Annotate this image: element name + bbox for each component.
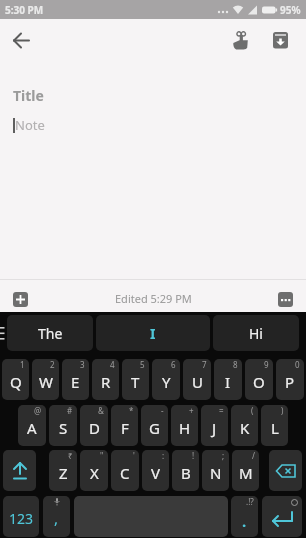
button[interactable] (262, 496, 302, 537)
button[interactable]: The (7, 315, 93, 351)
button[interactable] (3, 450, 36, 491)
staticText: H (179, 418, 191, 438)
button[interactable]: S (49, 405, 77, 446)
staticText: 123 (9, 509, 34, 528)
staticText: W (39, 372, 53, 392)
staticText: 3 (80, 359, 85, 370)
staticText: ₹ (68, 450, 73, 461)
staticText: " (100, 450, 104, 461)
staticText: + (189, 405, 194, 416)
staticText: Title (13, 86, 44, 105)
button[interactable]: J (201, 405, 228, 446)
staticText: T (131, 372, 140, 392)
button[interactable]: B (172, 450, 199, 491)
button[interactable] (0, 19, 43, 62)
staticText: & (98, 405, 104, 416)
staticText: 4 (110, 359, 115, 370)
staticText: 0 (295, 359, 300, 370)
staticText: , (54, 508, 59, 528)
button[interactable]: E (62, 359, 89, 400)
button[interactable]: . (231, 496, 258, 537)
staticText: D (89, 418, 100, 438)
staticText: @ (34, 405, 42, 416)
button[interactable]: G (141, 405, 168, 446)
button[interactable]: A (18, 405, 46, 446)
button[interactable]: P (276, 359, 304, 400)
staticText: B (181, 463, 191, 483)
staticText: F (121, 418, 129, 438)
staticText: 95% (280, 3, 301, 17)
staticText: I (150, 324, 156, 343)
staticText: ' (133, 450, 135, 461)
button[interactable]: Hi (213, 315, 299, 351)
staticText: The (38, 324, 63, 343)
button[interactable]: Y (152, 359, 180, 400)
staticText: ( (251, 405, 254, 416)
staticText: 1 (20, 359, 25, 370)
button[interactable] (269, 450, 302, 491)
staticText: # (67, 405, 73, 416)
button[interactable]: D (80, 405, 108, 446)
button[interactable]: R (92, 359, 119, 400)
button[interactable] (13, 292, 28, 307)
button[interactable]: L (261, 405, 288, 446)
staticText: .!? (246, 496, 254, 507)
button[interactable]: T (122, 359, 149, 400)
button[interactable]: 123 (3, 496, 39, 537)
button[interactable] (260, 19, 302, 62)
staticText: V (151, 463, 161, 483)
button[interactable]: M (232, 450, 259, 491)
staticText: / (252, 450, 255, 461)
staticText: O (253, 372, 265, 392)
button[interactable]: W (32, 359, 59, 400)
staticText: P (285, 372, 295, 392)
staticText: U (192, 372, 203, 392)
button[interactable] (278, 292, 293, 307)
staticText: C (120, 463, 130, 483)
button[interactable]: C (111, 450, 139, 491)
staticText: E (71, 372, 80, 392)
staticText: Z (59, 463, 68, 483)
button[interactable]: I (96, 315, 210, 351)
staticText: Note (15, 116, 45, 134)
button[interactable]: F (111, 405, 138, 446)
button[interactable]: , (43, 496, 70, 537)
staticText: R (101, 372, 111, 392)
staticText: A (27, 418, 37, 438)
staticText: X (90, 463, 99, 483)
staticText: 7 (202, 359, 207, 370)
staticText: 8 (233, 359, 238, 370)
button[interactable]: V (142, 450, 169, 491)
staticText: K (240, 418, 250, 438)
staticText: 5 (140, 359, 145, 370)
staticText: J (212, 418, 217, 438)
staticText: ) (281, 405, 284, 416)
button[interactable]: Q (2, 359, 29, 400)
staticText: S (59, 418, 68, 438)
staticText: Edited 5:29 PM (115, 291, 192, 306)
staticText: * (129, 405, 134, 416)
button[interactable] (220, 19, 260, 62)
staticText: L (271, 418, 279, 438)
staticText: ; (222, 450, 225, 461)
staticText: G (149, 418, 160, 438)
staticText: N (210, 463, 222, 483)
button[interactable]: N (202, 450, 229, 491)
button[interactable]: X (80, 450, 108, 491)
button[interactable]: Z (49, 450, 77, 491)
staticText: Q (10, 372, 22, 392)
staticText: Y (162, 372, 171, 392)
staticText: 5:30 PM (5, 3, 44, 17)
button[interactable]: U (183, 359, 211, 400)
staticText: . (242, 511, 247, 531)
staticText: 2 (50, 359, 55, 370)
staticText: ! (192, 450, 195, 461)
staticText: = (219, 405, 224, 416)
button[interactable]: K (231, 405, 258, 446)
button[interactable]: H (171, 405, 198, 446)
staticText: Hi (249, 324, 263, 343)
button[interactable]: I (214, 359, 242, 400)
staticText: 9 (264, 359, 269, 370)
button[interactable]: O (245, 359, 273, 400)
